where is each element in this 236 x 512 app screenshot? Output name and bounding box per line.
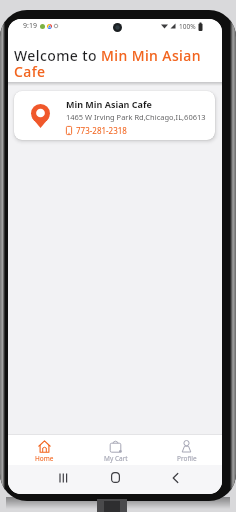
button[interactable]: Min Min Asian Cafe bbox=[14, 91, 215, 140]
button[interactable]: Home bbox=[8, 435, 80, 465]
staticText: Welcome to Min Min Asian Cafe bbox=[14, 46, 214, 81]
staticText: Home bbox=[35, 454, 54, 463]
staticText: Min Min Asian Cafe bbox=[66, 98, 152, 110]
button[interactable]: My Cart bbox=[80, 435, 151, 465]
button[interactable]: 773-281-2318 bbox=[66, 125, 127, 136]
staticText: 100% bbox=[179, 22, 196, 31]
staticText: My Cart bbox=[104, 454, 128, 463]
staticText: 9:19 bbox=[23, 21, 37, 31]
staticText: Profile bbox=[177, 454, 197, 463]
staticText: 1465 W Irving Park Rd,Chicago,IL,60613 bbox=[66, 112, 206, 122]
staticText: 773-281-2318 bbox=[76, 125, 127, 136]
button[interactable]: Profile bbox=[151, 435, 222, 465]
